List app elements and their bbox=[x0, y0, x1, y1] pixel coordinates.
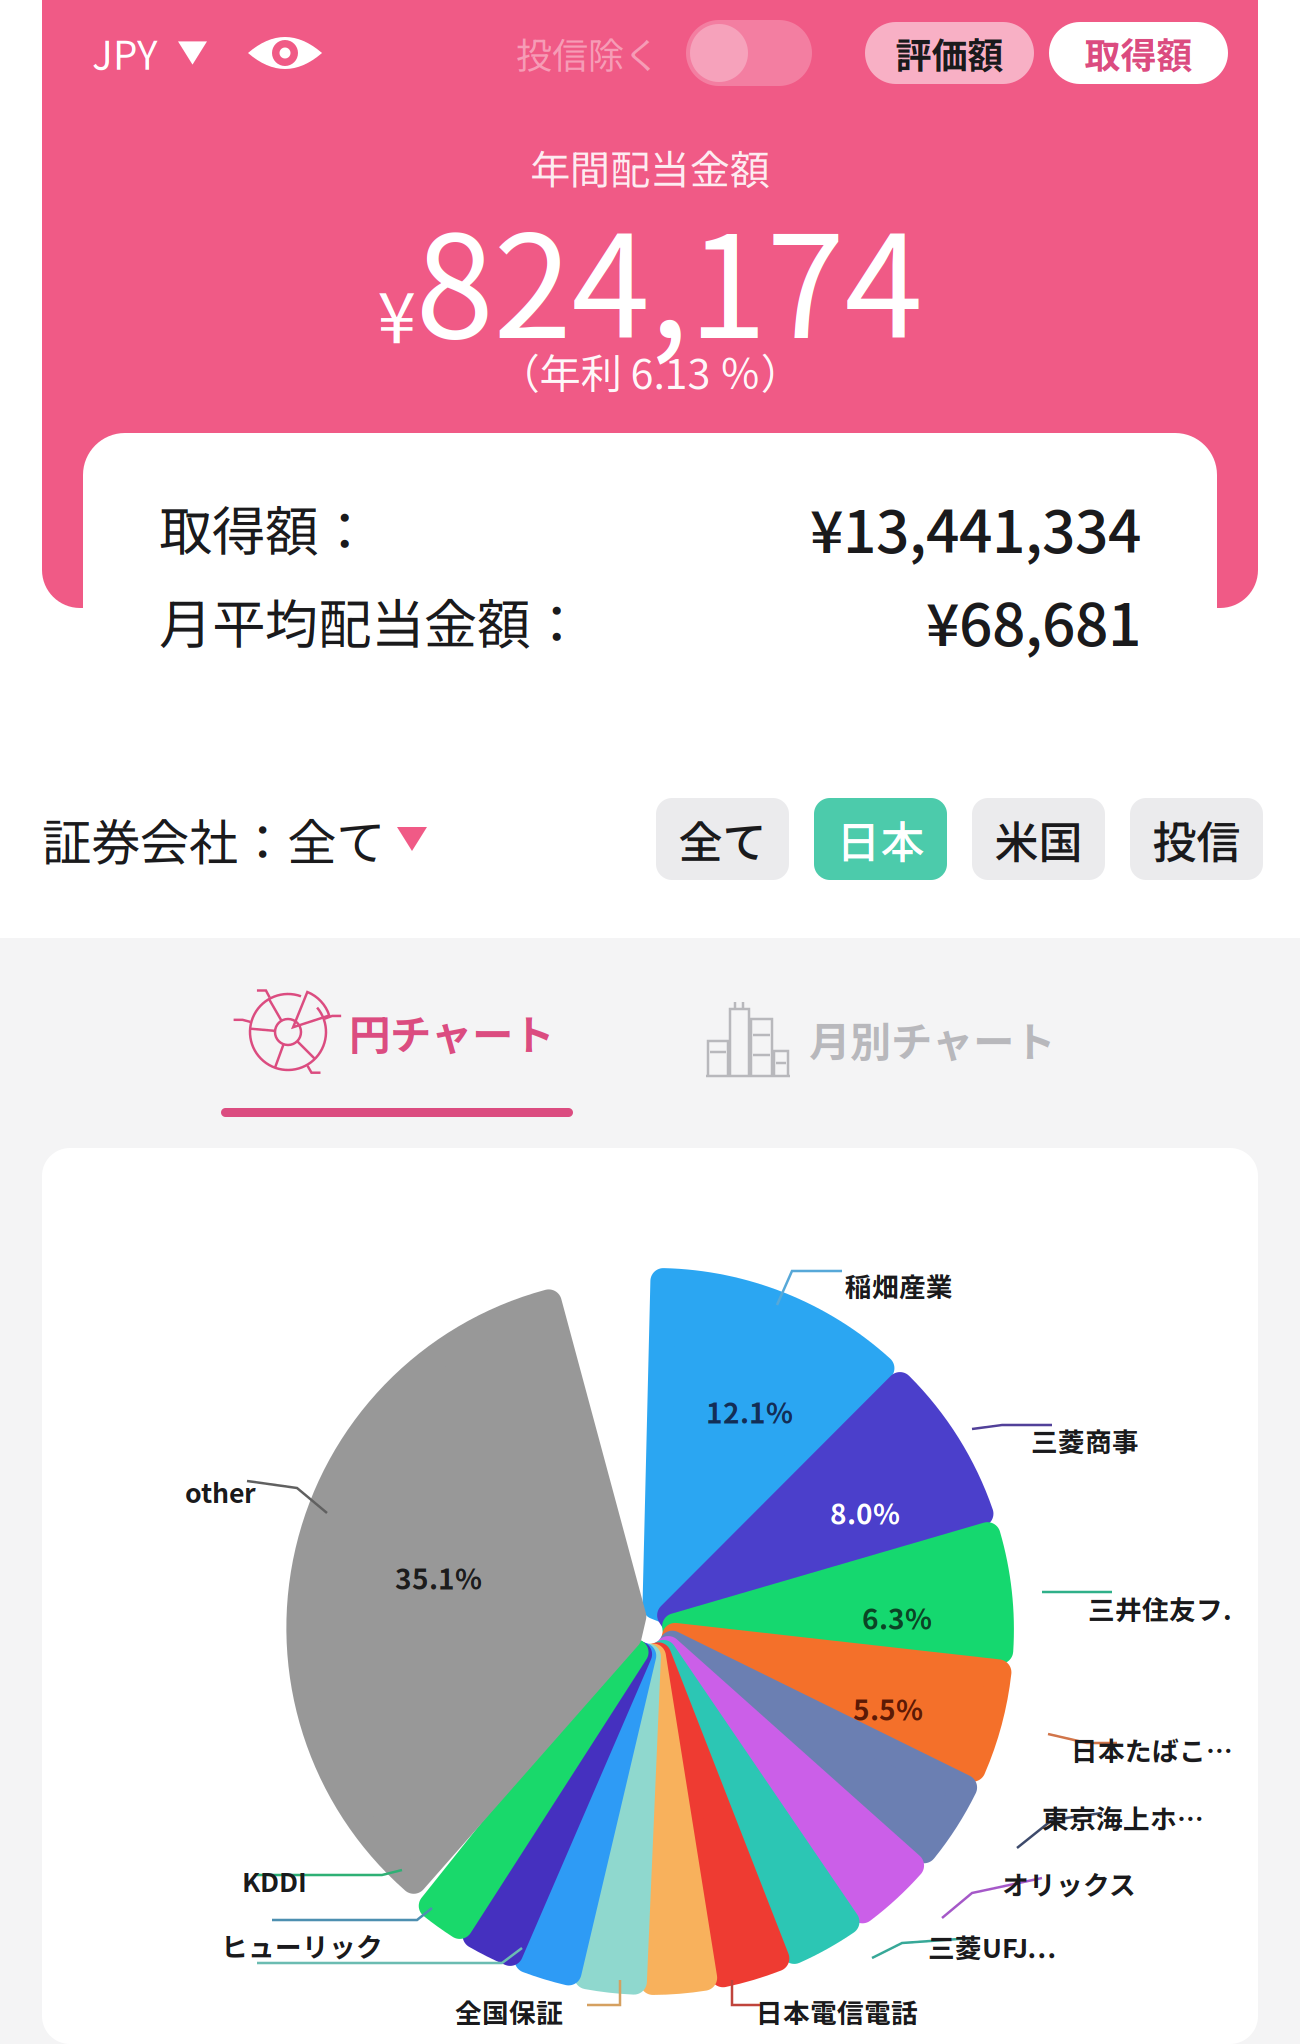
staticText: 6.3% bbox=[862, 1597, 932, 1637]
button[interactable]: 評価額 bbox=[865, 22, 1034, 84]
staticText: JPY bbox=[92, 25, 158, 81]
staticText: 取得額： bbox=[159, 489, 371, 566]
staticText: 米国 bbox=[994, 807, 1082, 871]
staticText: 取得額 bbox=[1084, 27, 1192, 79]
staticText: 投信 bbox=[1152, 807, 1240, 871]
staticText: （年利 6.13 ％） bbox=[498, 341, 801, 401]
staticText: 三菱商事 bbox=[1031, 1421, 1139, 1460]
staticText: ¥13,441,334 bbox=[810, 485, 1141, 570]
button[interactable]: 日本 bbox=[814, 798, 947, 880]
button[interactable]: 証券会社：全て bbox=[42, 803, 427, 875]
staticText: ¥68,681 bbox=[926, 578, 1141, 663]
staticText: 全て bbox=[678, 807, 766, 871]
staticText: 三菱UFJ… bbox=[928, 1927, 1056, 1966]
staticText: オリックス bbox=[1002, 1864, 1136, 1903]
staticText: ¥ bbox=[377, 262, 415, 363]
staticText: 12.1% bbox=[706, 1391, 793, 1431]
staticText: 824,174 bbox=[415, 174, 922, 379]
staticText: ヒューリック bbox=[221, 1926, 383, 1965]
staticText: 日本たばこ… bbox=[1071, 1730, 1233, 1769]
staticText: 5.5% bbox=[853, 1688, 923, 1728]
staticText: 35.1% bbox=[395, 1557, 482, 1597]
staticText: 全国保証 bbox=[455, 1992, 563, 2031]
staticText: 日本電信電話 bbox=[756, 1992, 918, 2031]
staticText: 投信除く bbox=[516, 27, 660, 79]
button[interactable]: 円チャート bbox=[221, 988, 573, 1117]
staticText: 稲畑産業 bbox=[845, 1266, 953, 1305]
button[interactable]: JPY bbox=[92, 25, 207, 81]
staticText: 月別チャート bbox=[809, 1009, 1055, 1069]
staticText: other bbox=[185, 1472, 256, 1511]
staticText: 評価額 bbox=[895, 27, 1003, 79]
button[interactable]: 月別チャート bbox=[704, 995, 1055, 1110]
staticText: 日本 bbox=[836, 807, 924, 871]
staticText: 東京海上ホ… bbox=[1042, 1798, 1204, 1837]
staticText: 8.0% bbox=[830, 1492, 900, 1532]
button[interactable]: Toggle amount visibility bbox=[246, 33, 324, 73]
staticText: 月平均配当金額： bbox=[159, 582, 583, 659]
staticText: KDDI bbox=[242, 1861, 307, 1900]
button[interactable]: 全て bbox=[656, 798, 789, 880]
button[interactable]: 取得額 bbox=[1049, 22, 1228, 84]
button[interactable]: Exclude mutual funds bbox=[686, 20, 812, 86]
staticText: 年間配当金額 bbox=[530, 138, 770, 196]
staticText: 証券会社：全て bbox=[42, 803, 385, 875]
staticText: 三井住友フ. bbox=[1088, 1589, 1232, 1628]
button[interactable]: 投信 bbox=[1130, 798, 1263, 880]
button[interactable]: 米国 bbox=[972, 798, 1105, 880]
staticText: 円チャート bbox=[349, 1002, 554, 1062]
